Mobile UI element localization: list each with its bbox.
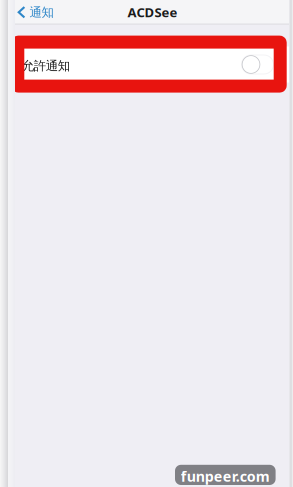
- staticText: funpeer.com: [181, 466, 270, 486]
- staticText: 允許通知: [22, 58, 70, 74]
- staticText: ACDSee: [127, 3, 177, 21]
- staticText: 通知: [30, 4, 54, 20]
- button[interactable]: 允許通知: [241, 54, 274, 74]
- button[interactable]: 通知: [9, 0, 63, 24]
